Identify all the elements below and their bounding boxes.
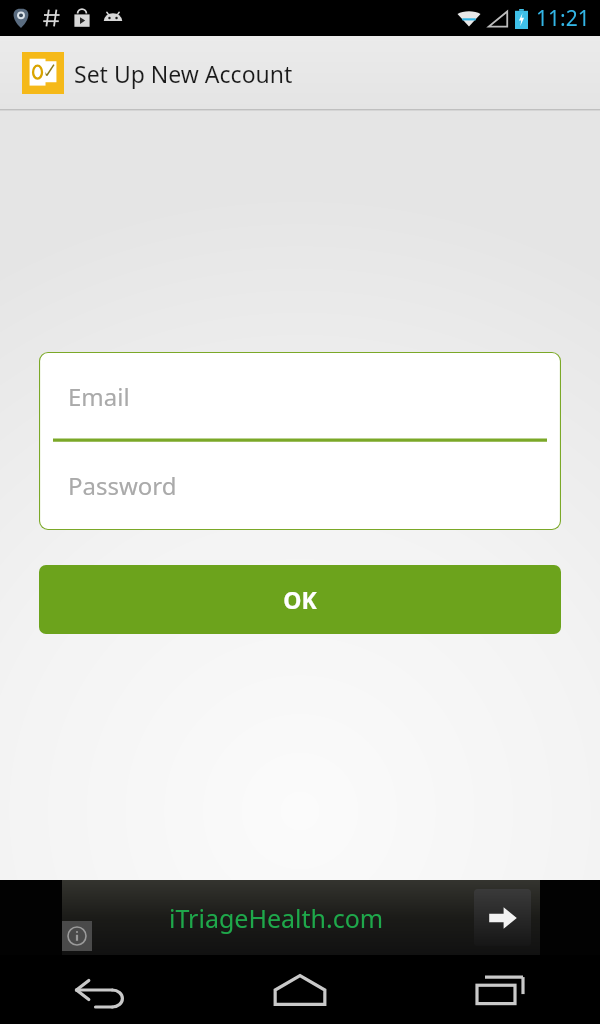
button[interactable]: iTriageHealth.com [62,880,540,955]
staticText: Password [68,469,177,502]
staticText: Set Up New Account [74,58,293,89]
button[interactable]: Recent apps [400,955,600,1024]
button[interactable]: Open ad [474,889,531,946]
staticText: iTriageHealth.com [169,901,384,935]
button[interactable]: OK [39,565,561,634]
button[interactable]: Home [200,955,400,1024]
button[interactable]: Password [39,441,561,530]
button[interactable]: Back [0,955,200,1024]
button[interactable]: Email [39,352,561,441]
staticText: OK [283,584,317,615]
staticText: 11:21 [536,4,590,33]
staticText: Email [68,380,130,413]
button[interactable]: Ad information [62,921,92,951]
